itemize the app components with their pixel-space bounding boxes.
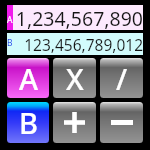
staticText: 1,234,567,890 — [13, 5, 143, 30]
button[interactable]: Plus — [53, 102, 96, 143]
button[interactable]: B — [7, 102, 49, 143]
button[interactable]: / — [100, 58, 143, 98]
staticText: B — [7, 37, 13, 49]
staticText: B — [19, 103, 38, 142]
staticText: A — [19, 59, 38, 98]
button[interactable]: Minus — [100, 102, 143, 143]
staticText: X — [66, 59, 84, 98]
staticText: / — [116, 59, 128, 98]
button[interactable]: A — [7, 5, 143, 30]
staticText: 123,456,789,012 — [13, 34, 143, 55]
button[interactable]: X — [53, 58, 96, 98]
button[interactable]: B — [7, 33, 143, 55]
button[interactable]: A — [7, 58, 49, 98]
staticText: A — [7, 14, 13, 26]
